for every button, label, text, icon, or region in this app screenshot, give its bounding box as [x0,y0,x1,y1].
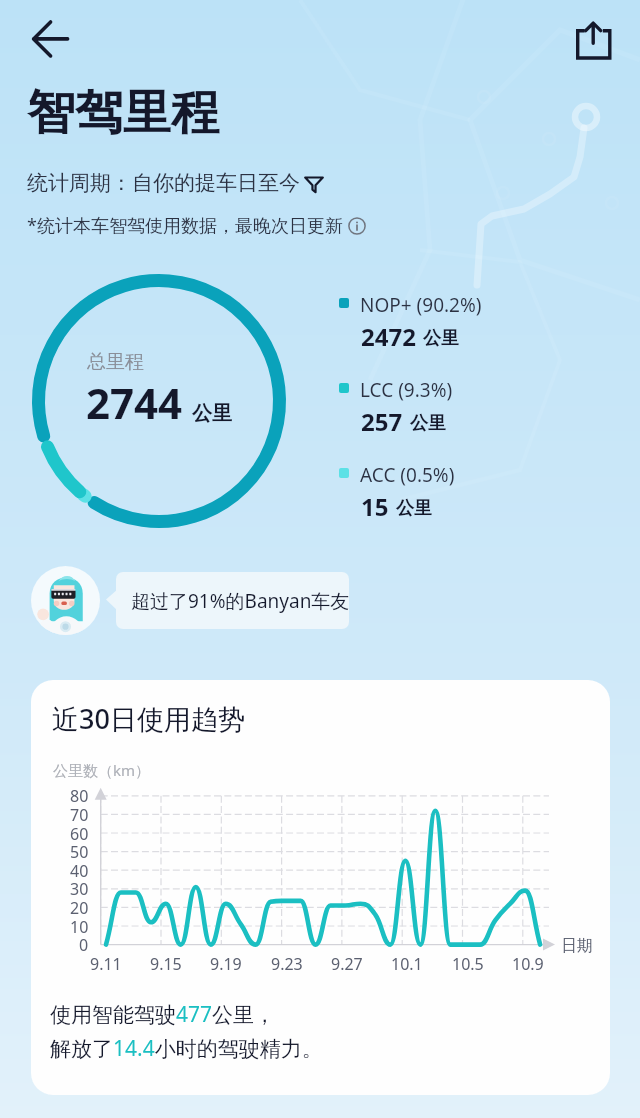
staticText: 总里程 [87,350,144,374]
staticText: 9.19 [210,953,242,975]
staticText: 15 [361,490,389,523]
staticText: 9.15 [150,953,182,975]
staticText: 0 [79,934,89,956]
staticText: 近30日使用趋势 [52,700,245,737]
staticText: 2744 [86,374,183,431]
staticText: 公里 [192,401,232,426]
staticText: 2472 [361,320,416,353]
staticText: 10.9 [512,953,544,975]
staticText: 公里 [410,412,446,435]
staticText: 9.27 [331,953,363,975]
button[interactable]: 超过了91%的Banyan车友 [116,572,349,629]
staticText: 80 [70,785,89,807]
button[interactable]: NOP+ (90.2%) [335,295,510,355]
staticText: NOP+ (90.2%) [360,292,482,318]
staticText: 40 [70,860,89,882]
staticText: *统计本车智驾使用数据，最晚次日更新 [27,213,343,238]
staticText: ACC (0.5%) [360,462,455,488]
staticText: LCC (9.3%) [360,377,453,403]
staticText: 10 [70,916,89,938]
staticText: 统计周期：自你的提车日至今 [27,170,300,196]
staticText: 公里数（km） [53,760,151,780]
button[interactable]: ACC (0.5%) [335,465,510,525]
staticText: 257 [361,405,403,438]
staticText: 9.23 [271,953,303,975]
button[interactable]: Avatar [31,566,100,635]
staticText: 10.1 [391,953,423,975]
staticText: 智驾里程 [27,83,219,143]
staticText: 60 [70,823,89,845]
button[interactable]: Back [16,5,84,73]
staticText: 50 [70,841,89,863]
staticText: 公里 [396,497,432,520]
staticText: 解放了14.4小时的驾驶精力。 [50,1034,323,1063]
staticText: 10.5 [452,953,484,975]
button[interactable]: Share [560,5,628,73]
staticText: 20 [70,897,89,919]
staticText: 超过了91%的Banyan车友 [131,588,349,614]
staticText: 日期 [561,936,593,956]
staticText: 使用智能驾驶477公里， [50,1000,276,1029]
staticText: 30 [70,878,89,900]
staticText: 70 [70,804,89,826]
staticText: 公里 [423,327,459,350]
button[interactable]: LCC (9.3%) [335,380,510,440]
staticText: 9.11 [90,953,122,975]
button[interactable]: Filter [303,172,325,194]
